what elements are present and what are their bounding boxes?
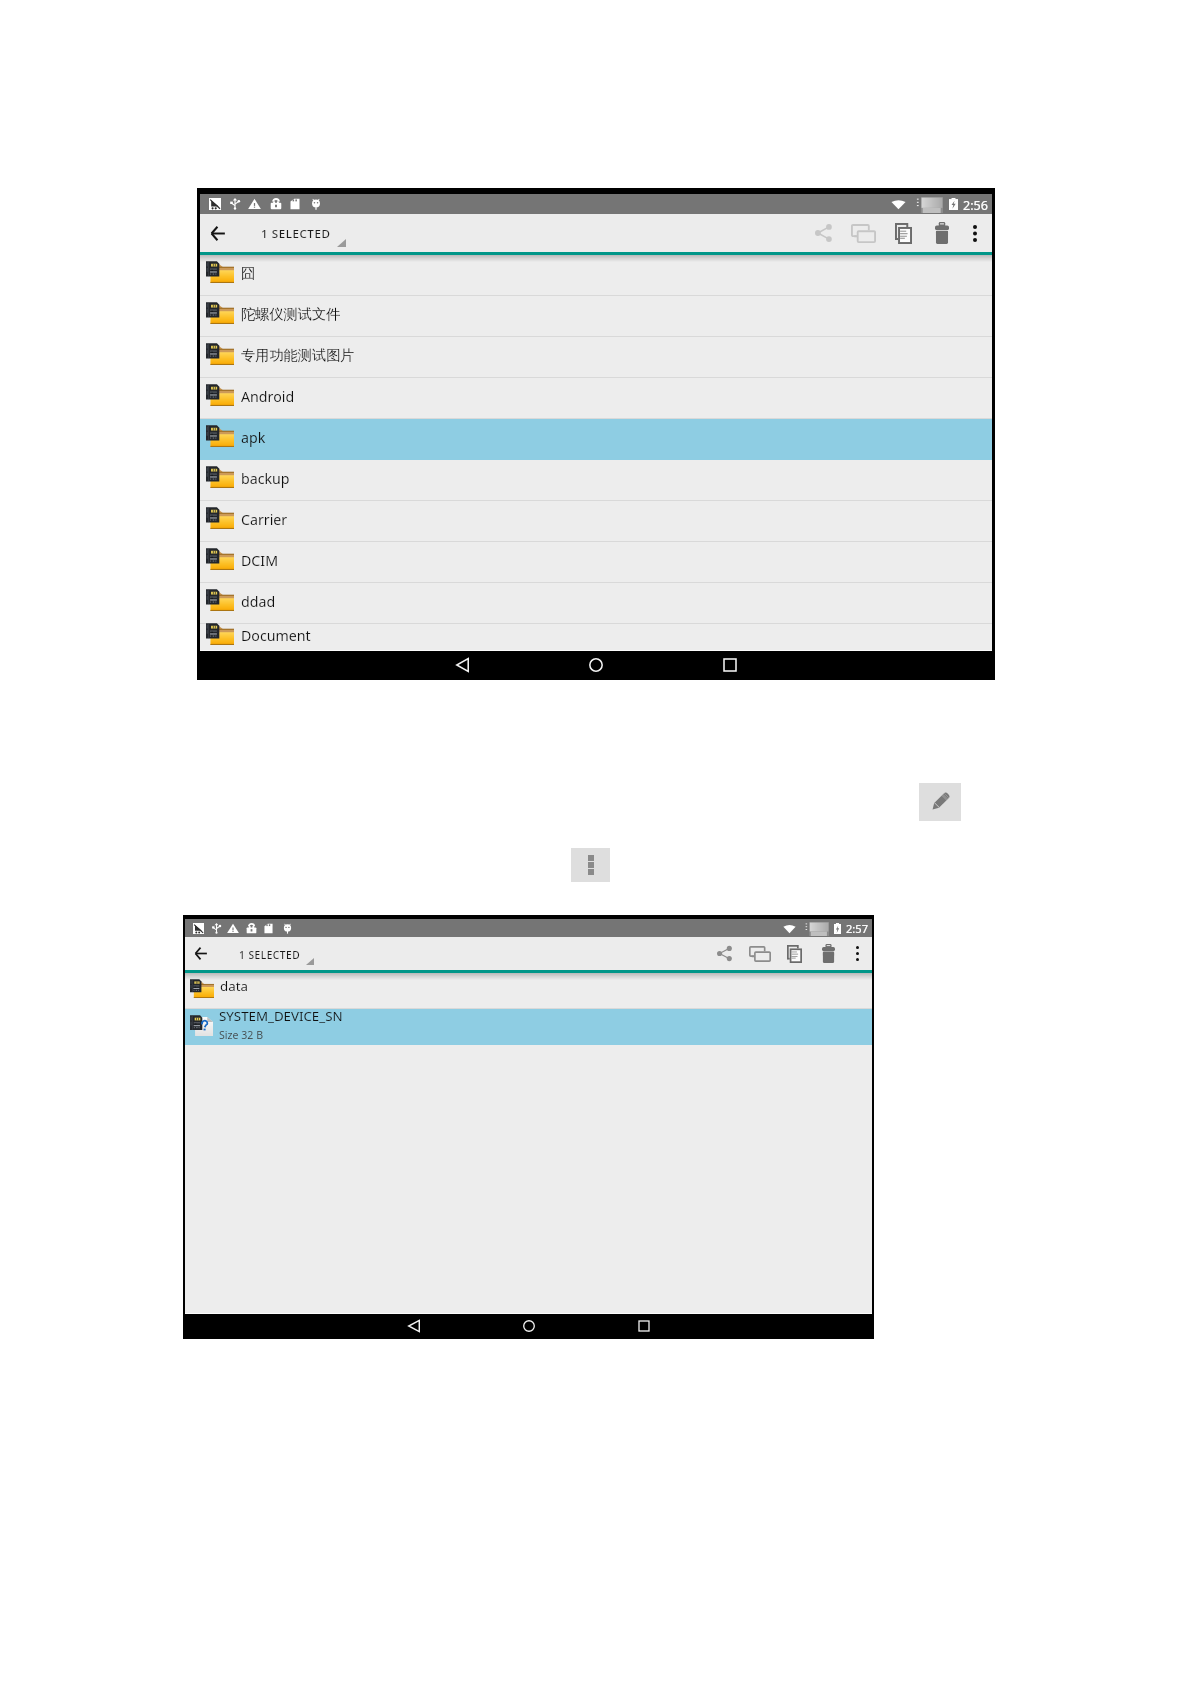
staticText: 专用功能测试图片 — [241, 346, 355, 364]
button[interactable]: Document — [200, 624, 992, 650]
button[interactable]: Back — [200, 214, 235, 252]
button[interactable]: 囧 — [200, 255, 992, 295]
staticText: backup — [241, 469, 290, 488]
button[interactable]: Delete — [812, 937, 845, 970]
button[interactable]: More options — [845, 937, 869, 970]
staticText: DCIM — [241, 551, 279, 570]
staticText: Android — [241, 387, 295, 406]
button[interactable]: 专用功能测试图片 — [200, 337, 992, 377]
button[interactable]: Back — [185, 937, 216, 970]
button[interactable]: Back — [356, 1314, 471, 1338]
button[interactable]: Home — [471, 1314, 586, 1338]
button[interactable]: Recents — [586, 1314, 701, 1338]
staticText: 1 SELECTED — [239, 948, 301, 962]
button[interactable]: ddad — [200, 583, 992, 623]
staticText: SYSTEM_DEVICE_SN — [219, 1007, 343, 1025]
staticText: Carrier — [241, 510, 288, 529]
button[interactable]: Copy — [777, 937, 812, 970]
button[interactable]: data — [185, 973, 872, 1008]
staticText: apk — [241, 428, 266, 447]
button[interactable]: Carrier — [200, 501, 992, 541]
staticText: 2:57 — [846, 921, 868, 936]
button[interactable]: backup — [200, 460, 992, 500]
button[interactable]: apk — [200, 419, 992, 459]
button[interactable]: Home — [529, 651, 663, 679]
staticText: 1 SELECTED — [261, 226, 331, 242]
button[interactable]: Recents — [663, 651, 797, 679]
button[interactable]: More options — [571, 848, 610, 882]
button[interactable]: Share — [803, 214, 843, 252]
staticText: Document — [241, 626, 311, 645]
button[interactable]: Android — [200, 378, 992, 418]
button[interactable]: Copy — [883, 214, 923, 252]
button[interactable]: Delete — [923, 214, 961, 252]
staticText: 陀螺仪测试文件 — [241, 305, 341, 323]
staticText: Size 32 B — [219, 1028, 264, 1042]
staticText: 2:56 — [963, 197, 988, 214]
button[interactable]: Edit — [919, 783, 961, 821]
staticText: data — [220, 977, 248, 995]
button[interactable]: Move — [843, 214, 883, 252]
button[interactable]: Share — [707, 937, 742, 970]
button[interactable]: Back — [395, 651, 529, 679]
button[interactable]: DCIM — [200, 542, 992, 582]
button[interactable]: Move — [742, 937, 777, 970]
button[interactable]: 陀螺仪测试文件 — [200, 296, 992, 336]
staticText: ddad — [241, 592, 276, 611]
button[interactable]: More options — [961, 214, 988, 252]
button[interactable]: SYSTEM_DEVICE_SN — [185, 1009, 872, 1044]
staticText: 囧 — [241, 264, 256, 282]
